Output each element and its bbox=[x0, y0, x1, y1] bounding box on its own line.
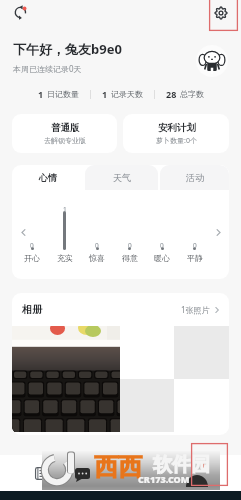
staticText: 萝卜数量:0个 bbox=[156, 136, 197, 146]
button[interactable]: 1张照片 bbox=[181, 304, 220, 315]
staticText: 暖心 bbox=[154, 253, 170, 263]
staticText: 活动 bbox=[186, 172, 204, 183]
button[interactable]: 充实 bbox=[51, 253, 79, 263]
button[interactable]: Sync bbox=[9, 1, 32, 24]
staticText: 相册 bbox=[22, 303, 42, 316]
button[interactable]: Previous bbox=[16, 225, 30, 239]
staticText: 1张照片 bbox=[181, 304, 210, 315]
staticText: 得意 bbox=[122, 253, 138, 263]
staticText: 惊喜 bbox=[89, 253, 105, 263]
staticText: 0 bbox=[95, 241, 99, 250]
button[interactable]: 暖心 bbox=[148, 253, 176, 263]
button[interactable]: Mine bbox=[161, 455, 241, 491]
button[interactable]: 安利计划 bbox=[123, 114, 229, 153]
staticText: 0 bbox=[193, 241, 197, 250]
button[interactable]: Photo bbox=[12, 326, 120, 432]
staticText: 去解锁专业版 bbox=[44, 136, 86, 145]
staticText: 平静 bbox=[187, 253, 203, 263]
staticText: 记录天数 bbox=[111, 89, 143, 99]
button[interactable]: 天气 bbox=[85, 165, 158, 190]
staticText: 充实 bbox=[57, 253, 73, 263]
button[interactable]: 平静 bbox=[181, 253, 209, 263]
button[interactable]: 得意 bbox=[116, 253, 144, 263]
staticText: 本周已连续记录0天 bbox=[13, 63, 82, 74]
button[interactable]: Profile bbox=[196, 45, 228, 77]
staticText: 开心 bbox=[24, 253, 40, 263]
staticText: 安利计划 bbox=[158, 122, 196, 134]
staticText: 0 bbox=[30, 241, 34, 250]
staticText: 西西 bbox=[94, 452, 142, 482]
staticText: 心情 bbox=[39, 172, 57, 183]
button[interactable]: 惊喜 bbox=[83, 253, 111, 263]
staticText: 总字数 bbox=[180, 89, 204, 99]
staticText: 1 bbox=[63, 205, 67, 214]
button[interactable]: 心情 bbox=[12, 165, 83, 190]
button[interactable]: Next bbox=[211, 225, 225, 239]
staticText: 1 bbox=[38, 88, 44, 100]
staticText: 0 bbox=[160, 241, 164, 250]
staticText: 日记数量 bbox=[47, 89, 79, 99]
button[interactable]: 开心 bbox=[18, 253, 46, 263]
button[interactable]: Discover bbox=[81, 455, 161, 491]
staticText: 普通版 bbox=[51, 122, 80, 134]
button[interactable]: Diary bbox=[0, 455, 81, 491]
staticText: 下午好，兔友b9e0 bbox=[13, 40, 122, 58]
staticText: 软件园 bbox=[153, 453, 210, 477]
staticText: 28 bbox=[166, 88, 177, 100]
staticText: 1 bbox=[102, 88, 108, 100]
staticText: CR173.COM bbox=[138, 473, 190, 485]
staticText: 0 bbox=[128, 241, 132, 250]
button[interactable]: 活动 bbox=[160, 165, 229, 190]
button[interactable]: 普通版 bbox=[12, 114, 117, 153]
staticText: 天气 bbox=[113, 172, 131, 183]
button[interactable]: Settings bbox=[209, 1, 232, 24]
